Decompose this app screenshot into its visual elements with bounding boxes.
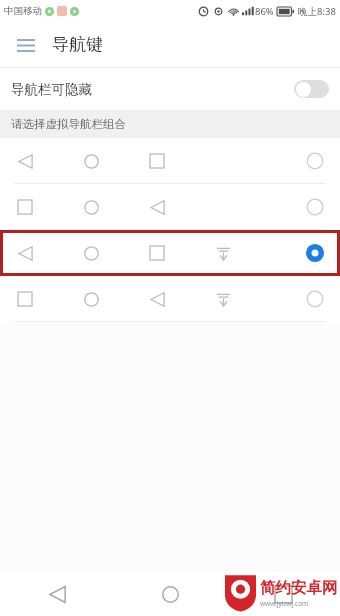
button[interactable]: Navigation bar layout option 4 <box>0 276 340 322</box>
button[interactable]: Navigation bar layout option 2 <box>0 184 340 230</box>
button[interactable]: Navigation bar layout option 1 <box>0 138 340 184</box>
staticText: 导航键 <box>52 34 103 55</box>
staticText: 中国移动 <box>4 5 42 17</box>
staticText: 导航栏可隐藏 <box>11 81 92 98</box>
staticText: www.jylzwj.com <box>260 599 309 608</box>
button[interactable]: Navigation bar layout option 3 <box>0 230 340 276</box>
button[interactable]: 导航栏可隐藏 <box>0 68 340 110</box>
staticText: 简约安卓网 <box>260 578 338 598</box>
staticText: 晚上8:38 <box>298 5 336 18</box>
staticText: 86% <box>255 5 274 18</box>
button[interactable]: Back <box>0 572 114 616</box>
staticText: 请选择虚拟导航栏组合 <box>11 117 126 131</box>
button[interactable]: Menu <box>8 27 44 63</box>
button[interactable]: Home <box>114 572 227 616</box>
button[interactable]: Recents <box>227 572 340 616</box>
